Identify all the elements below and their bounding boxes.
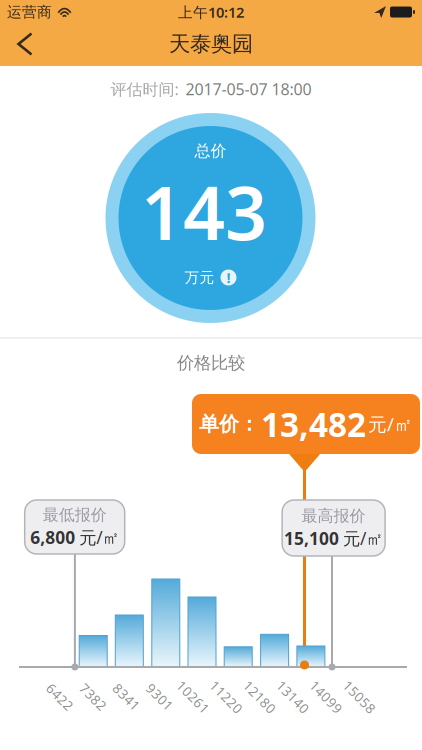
staticText: 元/㎡ bbox=[79, 526, 119, 549]
staticText: 14099 bbox=[306, 688, 346, 706]
staticText: 万元 bbox=[184, 268, 214, 286]
staticText: 最高报价 bbox=[302, 506, 366, 526]
staticText: 元/㎡ bbox=[343, 527, 383, 550]
staticText: 143 bbox=[141, 163, 267, 260]
staticText: 单价： bbox=[199, 412, 259, 436]
staticText: 6,800 bbox=[30, 526, 75, 549]
button[interactable]: Info bbox=[220, 268, 236, 287]
staticText: 运营商 bbox=[7, 3, 52, 21]
staticText: 最低报价 bbox=[43, 505, 107, 525]
staticText: 天泰奥园 bbox=[169, 31, 253, 57]
staticText: 7382 bbox=[77, 688, 109, 706]
staticText: 13140 bbox=[273, 688, 313, 706]
staticText: 11220 bbox=[206, 688, 246, 706]
staticText: 13,482 bbox=[261, 402, 366, 446]
staticText: 元/㎡ bbox=[368, 412, 413, 436]
staticText: 10261 bbox=[173, 688, 213, 706]
staticText: 15058 bbox=[339, 688, 379, 706]
staticText: ! bbox=[226, 268, 230, 287]
staticText: 9301 bbox=[144, 688, 176, 706]
staticText: 上午10:12 bbox=[178, 2, 244, 22]
staticText: 总价 bbox=[194, 141, 226, 161]
staticText: 6422 bbox=[44, 688, 76, 706]
staticText: 价格比较 bbox=[177, 352, 245, 374]
staticText: 15,100 bbox=[284, 527, 339, 550]
button[interactable]: Back bbox=[6, 23, 43, 64]
staticText: 评估时间: bbox=[110, 78, 178, 100]
staticText: 2017-05-07 18:00 bbox=[185, 78, 311, 100]
staticText: 8341 bbox=[111, 688, 143, 706]
staticText: 12180 bbox=[240, 688, 280, 706]
